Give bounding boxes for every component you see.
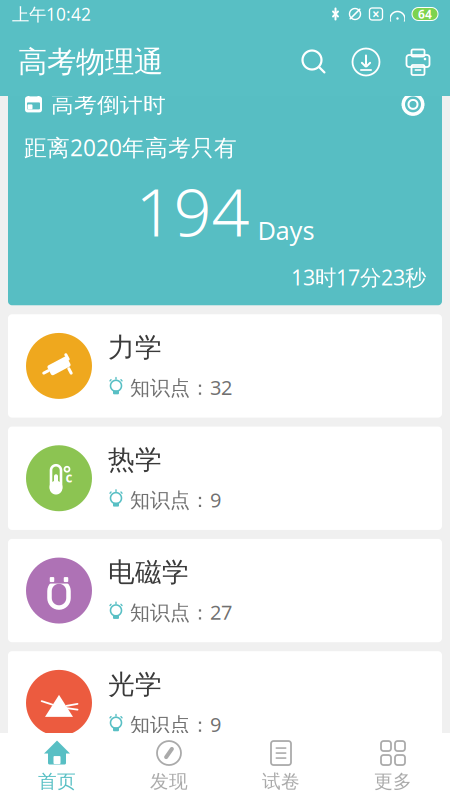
staticText: 更多 [374, 770, 412, 793]
staticText: 首页 [38, 770, 76, 793]
button[interactable]: 力学 [8, 314, 442, 418]
button[interactable]: 电磁学 [8, 539, 442, 642]
staticText: 上午10:42 [12, 2, 91, 25]
staticText: 力学 [108, 331, 162, 364]
staticText: 知识点：27 [130, 599, 232, 625]
staticText: 13时17分23秒 [291, 263, 426, 291]
staticText: c [65, 468, 72, 486]
button[interactable]: Search [288, 34, 340, 90]
staticText: Days [257, 213, 314, 247]
button[interactable]: 首页 [1, 733, 113, 800]
staticText: 64 [418, 6, 432, 22]
staticText: 光学 [108, 668, 162, 701]
button[interactable]: Downloads [340, 34, 392, 90]
staticText: 电磁学 [108, 556, 189, 589]
staticText: 距离2020年高考只有 [24, 132, 237, 162]
staticText: 高考倒计时 [51, 90, 166, 118]
button[interactable]: Countdown settings [400, 91, 426, 117]
staticText: 知识点：9 [130, 486, 221, 513]
staticText: 热学 [108, 444, 162, 476]
staticText: 试卷 [262, 770, 300, 793]
button[interactable]: 试卷 [225, 733, 337, 800]
button[interactable]: 更多 [337, 733, 449, 800]
button[interactable]: 发现 [113, 733, 225, 800]
staticText: 发现 [150, 770, 188, 793]
staticText: 高考物理通 [18, 44, 163, 80]
staticText: × [372, 5, 380, 23]
button[interactable]: c [8, 427, 442, 530]
staticText: 知识点：32 [130, 374, 232, 401]
button[interactable]: Print [392, 34, 444, 90]
staticText: 知识点：9 [130, 711, 221, 738]
button[interactable]: 光学 [8, 651, 442, 754]
staticText: 194 [135, 166, 249, 255]
